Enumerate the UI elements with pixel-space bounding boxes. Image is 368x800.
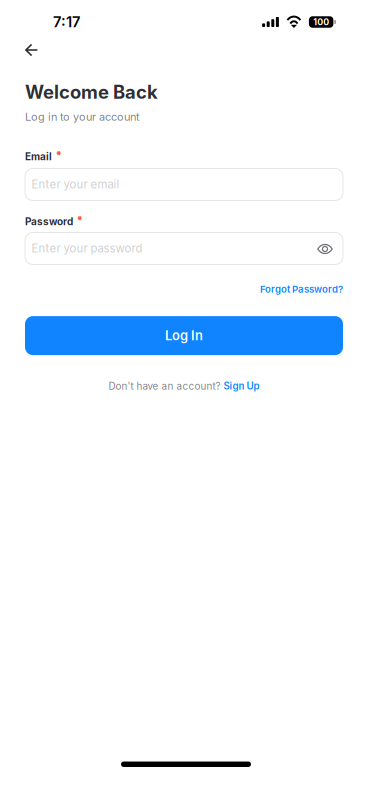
button[interactable]: Back <box>0 37 69 63</box>
button[interactable]: Enter your password <box>25 232 312 264</box>
staticText: Welcome Back <box>25 81 158 103</box>
staticText: Enter your password <box>31 242 142 255</box>
staticText: Log in to your account <box>25 110 140 123</box>
staticText: Sign Up <box>223 380 259 392</box>
button[interactable]: Forgot Password? <box>260 283 343 295</box>
staticText: Log In <box>165 328 203 343</box>
staticText: 7:17 <box>53 13 80 31</box>
staticText: Enter your email <box>31 178 119 191</box>
staticText: Email <box>25 150 52 162</box>
button[interactable]: Enter your email <box>25 168 337 200</box>
staticText: Forgot Password? <box>260 283 343 295</box>
staticText: Password <box>25 215 73 227</box>
button[interactable]: Sign Up <box>223 380 259 392</box>
staticText: Don't have an account? <box>108 380 220 392</box>
staticText: 100 <box>313 17 329 27</box>
button[interactable]: Log In <box>25 316 343 355</box>
button[interactable]: Show password <box>312 232 337 264</box>
